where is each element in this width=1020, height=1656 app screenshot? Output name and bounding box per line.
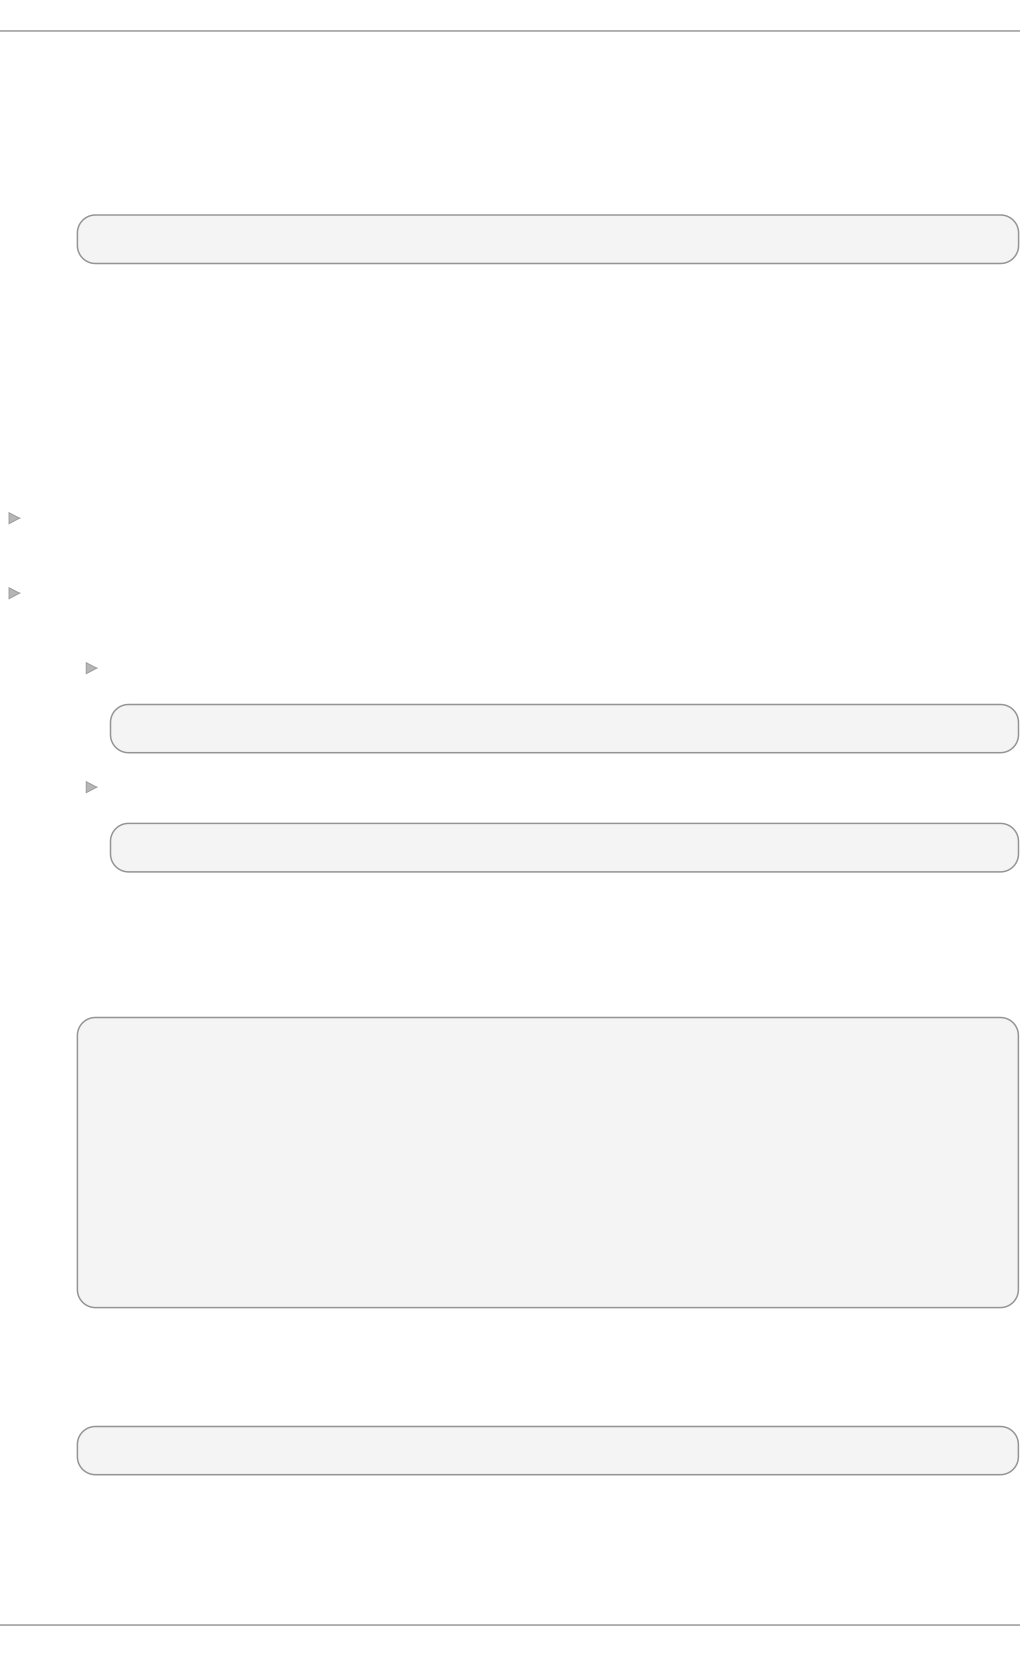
button[interactable]: Text field [77,215,1019,263]
button[interactable]: Expand section [9,513,20,524]
button[interactable]: Text field [110,704,1018,753]
button[interactable]: Expand section [86,782,97,793]
button[interactable]: Text field [110,823,1018,872]
button[interactable]: Text field [77,1017,1018,1308]
button[interactable]: Expand section [9,588,20,599]
button[interactable]: Expand section [86,663,97,674]
button[interactable]: Text field [77,1426,1018,1475]
